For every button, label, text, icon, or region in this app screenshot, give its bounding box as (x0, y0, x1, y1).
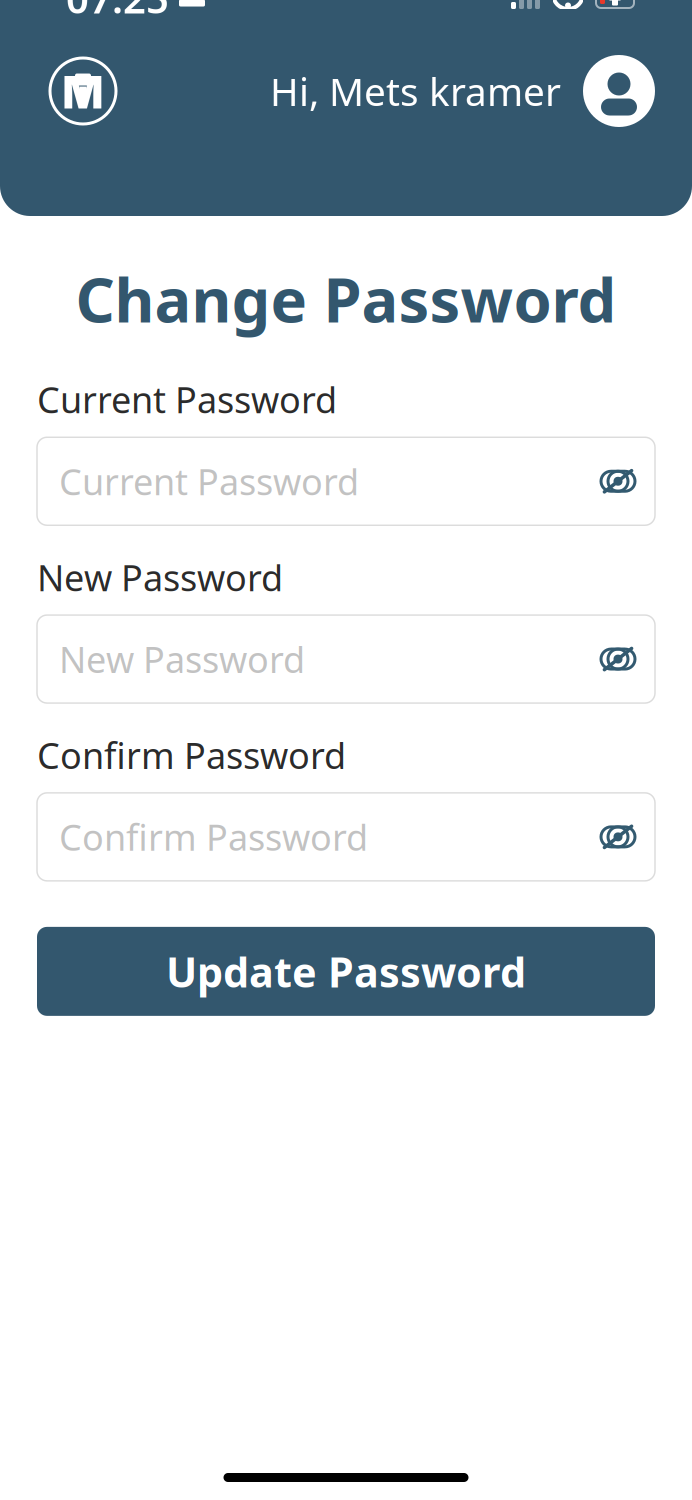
staticText: Confirm Password (59, 813, 368, 861)
staticText: Confirm Password (37, 731, 346, 779)
button[interactable]: Show Confirm Password (591, 810, 645, 864)
button[interactable]: Home (46, 54, 120, 128)
staticText: New Password (59, 635, 305, 683)
staticText: 07:25 (66, 0, 169, 24)
button[interactable]: Account, Mets kramer (270, 55, 655, 127)
button[interactable]: Update Password (37, 927, 655, 1016)
staticText: New Password (37, 553, 283, 601)
staticText: M (61, 61, 105, 121)
staticText: Current Password (59, 457, 359, 505)
staticText: Update Password (166, 944, 526, 999)
staticText: Hi, Mets kramer (270, 65, 561, 117)
staticText: Current Password (37, 375, 337, 423)
staticText: Change Password (75, 258, 616, 339)
button[interactable]: Show Current Password (591, 454, 645, 508)
button[interactable]: Show New Password (591, 632, 645, 686)
